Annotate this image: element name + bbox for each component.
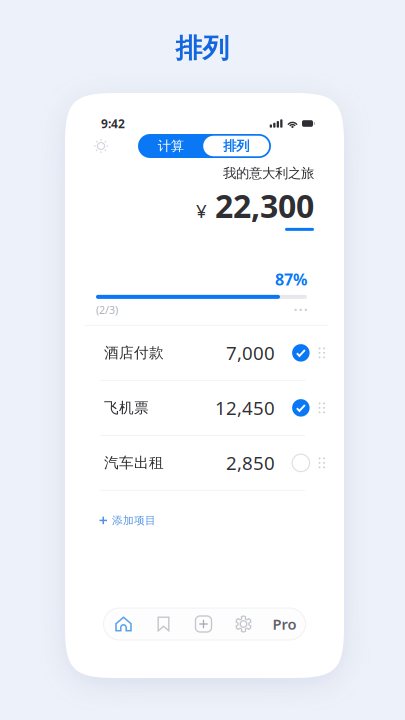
button[interactable]: New item: [183, 608, 223, 640]
staticText: 汽车出租: [104, 454, 164, 472]
button[interactable]: Appearance: [89, 134, 113, 158]
staticText: 我的意大利之旅: [223, 165, 314, 181]
staticText: 2,850: [226, 450, 275, 475]
staticText: 12,450: [215, 395, 275, 420]
staticText: 87%: [275, 269, 307, 290]
button[interactable]: Saved: [143, 608, 183, 640]
button[interactable]: Home: [103, 608, 143, 640]
button[interactable]: Settings: [223, 608, 263, 640]
staticText: 计算: [158, 138, 184, 154]
staticText: 7,000: [226, 340, 275, 365]
button[interactable]: 飞机票: [104, 381, 325, 435]
button[interactable]: 排列: [203, 136, 269, 156]
button[interactable]: 酒店付款: [104, 326, 325, 380]
staticText: 排列: [223, 138, 249, 154]
button[interactable]: Pro: [263, 608, 305, 640]
staticText: ¥: [196, 198, 207, 223]
staticText: 添加项目: [112, 514, 156, 527]
button[interactable]: 添加项目: [65, 491, 344, 527]
button[interactable]: 计算: [138, 134, 203, 158]
staticText: 排列: [175, 32, 229, 65]
staticText: Pro: [272, 614, 296, 634]
staticText: 飞机票: [104, 399, 149, 417]
button[interactable]: 汽车出租: [104, 436, 325, 490]
staticText: 22,300: [215, 184, 314, 227]
staticText: 酒店付款: [104, 344, 164, 362]
staticText: (2/3): [96, 303, 118, 317]
staticText: 9:42: [101, 115, 125, 131]
